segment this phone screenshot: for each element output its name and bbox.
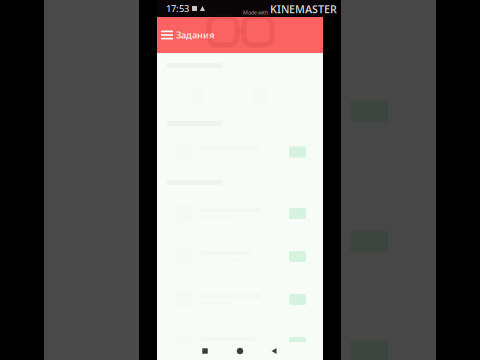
staticText: Задания [176,29,214,41]
button[interactable] [157,278,323,321]
button[interactable] [157,321,323,360]
button[interactable] [157,131,323,173]
button[interactable]: Open navigation menu [159,17,175,53]
button[interactable]: Home [225,342,255,360]
button[interactable]: Recent apps [190,342,220,360]
button[interactable] [157,192,323,235]
button[interactable] [157,235,323,278]
staticText: 17:53 [166,2,189,15]
staticText: KINEMASTER [270,2,337,16]
staticText: Made with [243,9,268,16]
button[interactable]: Back [259,342,289,360]
